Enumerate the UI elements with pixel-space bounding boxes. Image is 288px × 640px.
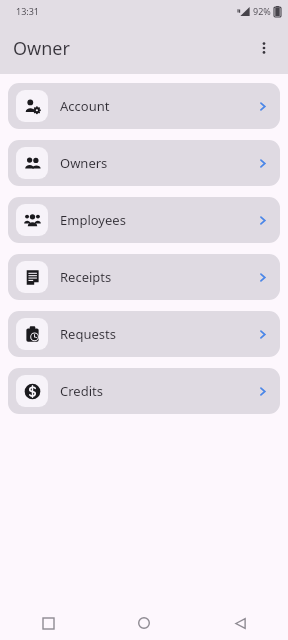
staticText: Requests	[60, 325, 116, 343]
button[interactable]: Home	[96, 606, 192, 640]
staticText: Credits	[60, 382, 103, 400]
button[interactable]: Receipts	[8, 254, 280, 300]
button[interactable]: Account	[8, 83, 280, 129]
button[interactable]: Employees	[8, 197, 280, 243]
button[interactable]: Recent apps	[0, 606, 96, 640]
button[interactable]: Requests	[8, 311, 280, 357]
button[interactable]: Back	[192, 606, 288, 640]
staticText: Owner	[13, 36, 70, 61]
staticText: Owners	[60, 154, 108, 172]
button[interactable]: Owners	[8, 140, 280, 186]
staticText: Employees	[60, 211, 126, 229]
button[interactable]: Credits	[8, 368, 280, 414]
button[interactable]: More options	[244, 28, 284, 68]
staticText: Account	[60, 97, 110, 115]
staticText: 92%	[253, 5, 271, 17]
staticText: 13:31	[16, 5, 40, 17]
staticText: Receipts	[60, 268, 112, 286]
